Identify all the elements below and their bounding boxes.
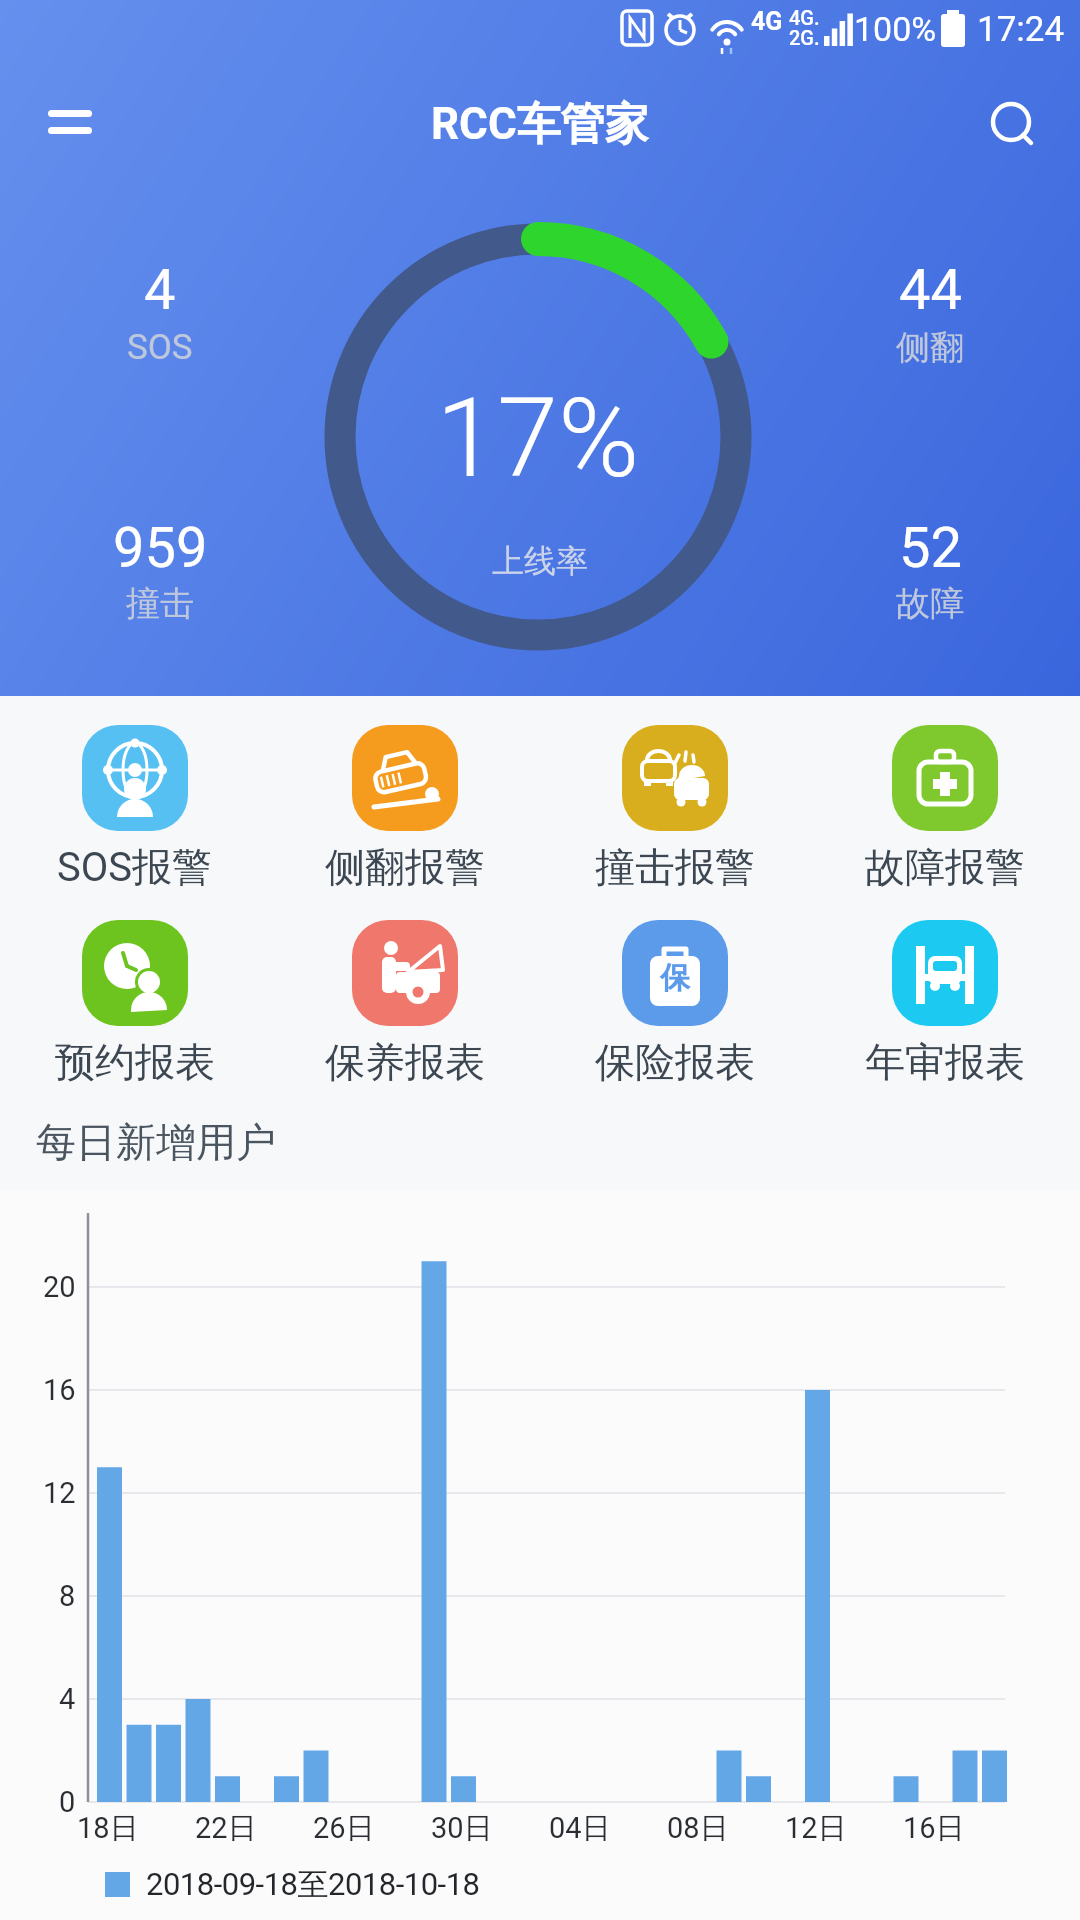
button[interactable] <box>892 920 998 1026</box>
staticText: 每日新增用户 <box>36 1117 276 1167</box>
staticText: 16日 <box>903 1810 965 1847</box>
staticText: 17:24 <box>977 9 1065 50</box>
staticText: 2018-09-18至2018-10-18 <box>146 1865 480 1904</box>
button[interactable] <box>82 920 188 1026</box>
staticText: 故障报警 <box>865 842 1025 892</box>
button[interactable] <box>978 90 1046 158</box>
staticText: 100% <box>854 9 937 49</box>
button[interactable] <box>892 725 998 831</box>
staticText: 2G. <box>789 26 820 49</box>
staticText: 侧翻 <box>896 326 964 369</box>
staticText: 0 <box>59 1785 76 1819</box>
staticText: 12 <box>43 1476 76 1510</box>
staticText: 22日 <box>195 1810 257 1847</box>
staticText: 16 <box>43 1373 76 1407</box>
staticText: 上线率 <box>492 541 588 581</box>
staticText: 年审报表 <box>865 1037 1025 1087</box>
staticText: 8 <box>59 1579 76 1613</box>
staticText: 26日 <box>313 1810 375 1847</box>
button[interactable] <box>352 725 458 831</box>
staticText: 52 <box>899 515 962 581</box>
staticText: 08日 <box>667 1810 729 1847</box>
staticText: 44 <box>899 257 962 323</box>
staticText: 959 <box>113 515 208 581</box>
button[interactable] <box>622 920 728 1026</box>
staticText: 20 <box>43 1270 76 1304</box>
staticText: SOS报警 <box>57 842 213 892</box>
staticText: 4 <box>144 257 176 323</box>
staticText: SOS <box>127 327 193 368</box>
button[interactable] <box>352 920 458 1026</box>
button[interactable] <box>622 725 728 831</box>
staticText: RCC车管家 <box>431 97 649 152</box>
staticText: 侧翻报警 <box>325 842 485 892</box>
staticText: 18日 <box>77 1810 139 1847</box>
staticText: 4 <box>59 1682 76 1716</box>
button[interactable] <box>34 96 106 152</box>
staticText: 故障 <box>896 582 964 625</box>
staticText: 撞击报警 <box>595 842 755 892</box>
staticText: 保险报表 <box>595 1037 755 1087</box>
staticText: 12日 <box>785 1810 847 1847</box>
staticText: 30日 <box>431 1810 493 1847</box>
staticText: 撞击 <box>126 582 194 625</box>
staticText: 保养报表 <box>325 1037 485 1087</box>
staticText: 4G <box>751 7 783 36</box>
staticText: 4G. <box>789 6 820 29</box>
staticText: 04日 <box>549 1810 611 1847</box>
staticText: 保 <box>660 959 690 997</box>
staticText: 17% <box>436 374 640 503</box>
staticText: 预约报表 <box>55 1037 215 1087</box>
button[interactable] <box>82 725 188 831</box>
